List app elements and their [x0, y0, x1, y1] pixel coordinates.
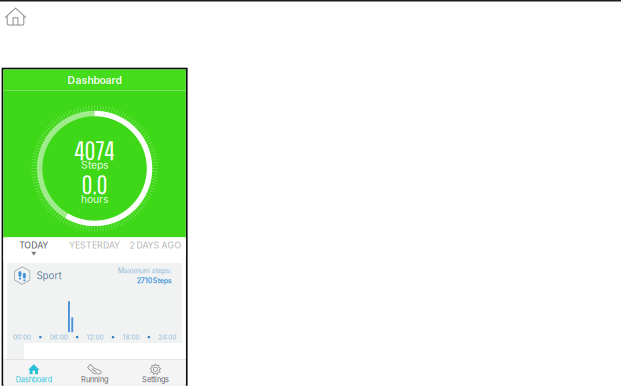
staticText: 18:00: [122, 333, 139, 341]
button[interactable]: Home: [1, 4, 29, 28]
staticText: 4074: [75, 135, 115, 165]
staticText: Maximum steps:: [118, 266, 172, 275]
button[interactable]: 2 DAYS AGO: [125, 237, 186, 261]
staticText: Settings: [142, 375, 169, 384]
staticText: 06:00: [50, 333, 68, 341]
staticText: YESTERDAY: [69, 240, 120, 250]
staticText: 24:00: [158, 333, 176, 341]
button[interactable]: Running: [64, 359, 125, 386]
staticText: Steps: [81, 159, 108, 171]
staticText: TODAY: [19, 240, 48, 250]
staticText: Running: [81, 375, 108, 384]
staticText: hours: [81, 193, 108, 205]
staticText: 00:00: [13, 333, 31, 341]
staticText: 2710Steps: [137, 276, 172, 285]
staticText: Sport: [36, 270, 61, 281]
button[interactable]: YESTERDAY: [64, 237, 125, 261]
button[interactable]: Settings: [125, 359, 186, 386]
staticText: Dashboard: [68, 74, 122, 86]
button[interactable]: Dashboard: [3, 359, 64, 386]
staticText: 2 DAYS AGO: [129, 240, 181, 250]
staticText: Dashboard: [16, 375, 52, 384]
button[interactable]: TODAY: [3, 237, 64, 261]
staticText: 12:00: [87, 333, 104, 341]
staticText: 0.0: [82, 169, 108, 199]
